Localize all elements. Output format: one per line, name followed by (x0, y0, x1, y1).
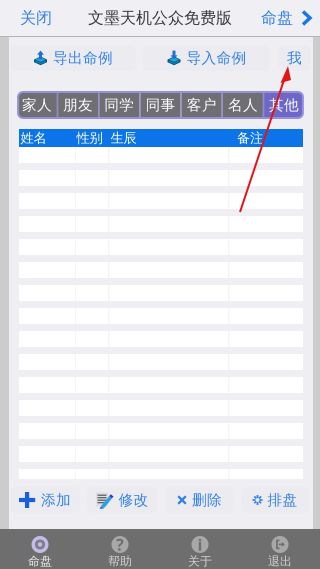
staticText: 同事 (145, 96, 175, 114)
staticText: 命盘 (261, 8, 293, 28)
staticText: 关于 (188, 554, 212, 569)
button[interactable]: 关闭 (10, 0, 62, 36)
staticText: 名人 (228, 96, 258, 114)
staticText: 朋友 (63, 96, 93, 114)
button[interactable]: 导入命例 (143, 45, 270, 71)
button[interactable]: i (160, 529, 240, 569)
staticText: 删除 (192, 491, 222, 509)
button[interactable]: 删除 (165, 487, 234, 513)
staticText: 客户 (187, 96, 217, 114)
staticText: ? (116, 534, 124, 555)
button[interactable]: 修改 (87, 487, 157, 513)
button[interactable]: 命盘 (0, 529, 80, 569)
staticText: 退出 (268, 554, 292, 569)
staticText: 修改 (118, 491, 148, 509)
button[interactable]: 其他 (264, 92, 304, 118)
button[interactable]: 名人 (223, 92, 263, 118)
button[interactable]: 家人 (17, 92, 57, 118)
button[interactable]: 退出 (240, 529, 320, 569)
button[interactable]: 客户 (182, 92, 222, 118)
staticText: 其他 (269, 96, 299, 114)
staticText: 排盘 (267, 491, 297, 509)
staticText: 添加 (41, 491, 71, 509)
button[interactable]: 导出命例 (10, 45, 136, 71)
button[interactable]: 同事 (140, 92, 180, 118)
button[interactable]: 命盘 (253, 0, 312, 36)
staticText: 关闭 (20, 8, 52, 28)
staticText: 性别 (77, 130, 103, 146)
button[interactable]: 添加 (10, 487, 80, 513)
staticText: i (197, 534, 202, 555)
button[interactable]: 同学 (99, 92, 139, 118)
staticText: 命盘 (28, 554, 52, 569)
staticText: 导出命例 (53, 49, 113, 67)
button[interactable]: 我 (278, 45, 311, 71)
staticText: 帮助 (108, 554, 132, 569)
staticText: 导入命例 (186, 49, 246, 67)
staticText: 家人 (22, 96, 52, 114)
staticText: 姓名 (21, 130, 47, 146)
staticText: 生辰 (111, 130, 137, 146)
staticText: 备注 (237, 130, 263, 146)
button[interactable]: ? (80, 529, 160, 569)
staticText: 同学 (104, 96, 134, 114)
staticText: 我 (287, 49, 302, 67)
button[interactable]: 朋友 (58, 92, 98, 118)
button[interactable]: 排盘 (241, 487, 309, 513)
staticText: 文墨天机公众免费版 (88, 8, 232, 28)
